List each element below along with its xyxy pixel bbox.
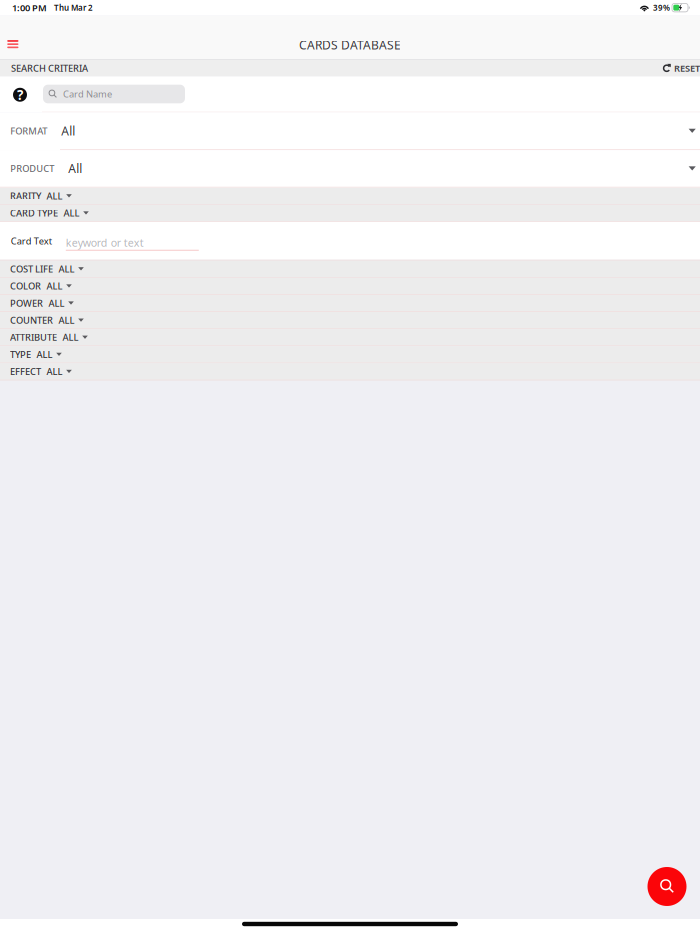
staticText: ? xyxy=(17,86,23,104)
button[interactable]: Card Name xyxy=(43,85,185,103)
staticText: TYPE xyxy=(10,348,31,361)
button[interactable]: Card Text xyxy=(0,222,700,260)
button[interactable]: POWER xyxy=(0,295,700,312)
staticText: ALL xyxy=(37,348,53,361)
staticText: ALL xyxy=(63,331,79,343)
staticText: COLOR xyxy=(10,280,41,292)
staticText: ALL xyxy=(49,297,65,309)
staticText: Card Text xyxy=(11,235,52,247)
staticText: FORMAT xyxy=(10,125,47,137)
staticText: ALL xyxy=(47,190,63,202)
button[interactable]: FORMAT xyxy=(0,112,700,150)
staticText: POWER xyxy=(10,297,43,309)
staticText: Thu Mar 2 xyxy=(54,2,93,13)
staticText: COST LIFE xyxy=(10,263,53,275)
staticText: SEARCH CRITERIA xyxy=(11,62,88,74)
button[interactable]: COUNTER xyxy=(0,312,700,329)
staticText: CARD TYPE xyxy=(10,207,58,219)
staticText: All xyxy=(61,123,75,139)
button[interactable]: Menu xyxy=(0,15,27,60)
staticText: Card Name xyxy=(63,88,112,100)
button[interactable]: TYPE xyxy=(0,346,700,363)
button[interactable]: EFFECT xyxy=(0,363,700,380)
staticText: ALL xyxy=(59,263,75,275)
button[interactable]: Search xyxy=(647,867,686,906)
staticText: All xyxy=(68,160,82,176)
staticText: 1:00 PM xyxy=(12,2,47,14)
staticText: ALL xyxy=(64,207,80,219)
button[interactable]: ATTRIBUTE xyxy=(0,329,700,346)
staticText: RESET xyxy=(674,62,700,74)
staticText: RARITY xyxy=(10,190,41,202)
staticText: CARDS DATABASE xyxy=(299,37,401,53)
button[interactable]: CARD TYPE xyxy=(0,205,700,222)
button[interactable]: Help xyxy=(5,76,35,111)
button[interactable]: COST LIFE xyxy=(0,261,700,278)
button[interactable]: COLOR xyxy=(0,278,700,295)
staticText: COUNTER xyxy=(10,314,53,326)
button[interactable]: RARITY xyxy=(0,188,700,205)
staticText: ALL xyxy=(59,314,75,326)
button[interactable]: PRODUCT xyxy=(0,150,700,188)
staticText: PRODUCT xyxy=(10,162,54,175)
staticText: keyword or text xyxy=(66,236,144,250)
staticText: ATTRIBUTE xyxy=(10,331,57,343)
staticText: 39% xyxy=(653,2,670,13)
staticText: EFFECT xyxy=(10,365,41,378)
staticText: ALL xyxy=(47,365,63,378)
button[interactable]: RESET xyxy=(657,60,700,76)
staticText: ALL xyxy=(47,280,63,292)
